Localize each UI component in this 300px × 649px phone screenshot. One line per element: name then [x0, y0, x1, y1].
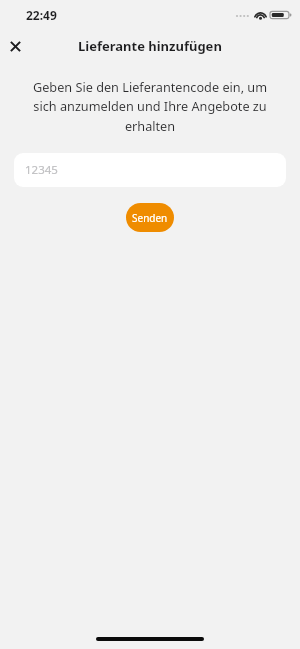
staticText: Senden [132, 211, 168, 225]
staticText: Lieferante hinzufügen [78, 37, 222, 55]
staticText: 22:49 [26, 7, 57, 23]
button[interactable]: Senden [126, 203, 174, 232]
button[interactable]: Schließen [4, 35, 26, 57]
staticText: Geben Sie den Lieferantencode ein, um si… [22, 78, 278, 135]
button[interactable]: 12345 [14, 153, 286, 187]
staticText: 12345 [25, 162, 58, 178]
